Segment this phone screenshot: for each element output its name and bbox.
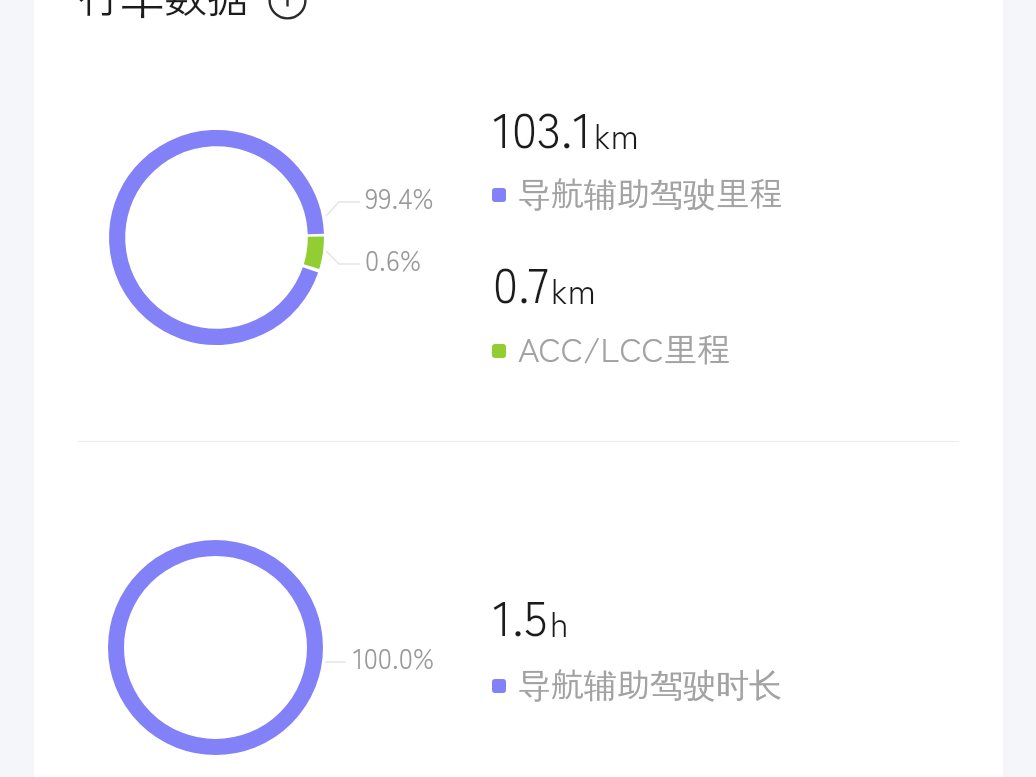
button[interactable]: 行车数据说明 <box>268 0 307 20</box>
staticText: 行车数据 <box>78 0 250 26</box>
staticText: 导航辅助驾驶里程 <box>518 168 782 216</box>
button[interactable]: 导航辅助驾驶时长 <box>492 659 782 707</box>
staticText: ACC/LCC里程 <box>518 324 730 372</box>
button[interactable]: 行车数据 <box>70 0 320 25</box>
staticText: 0.7 <box>493 246 549 318</box>
staticText: km <box>594 108 639 159</box>
staticText: 1.5 <box>493 579 548 651</box>
staticText: 导航辅助驾驶时长 <box>518 659 782 707</box>
staticText: 99.4% <box>365 177 434 218</box>
button[interactable]: ACC/LCC里程 <box>492 324 730 372</box>
staticText: 100.0% <box>353 637 435 678</box>
staticText: h <box>550 596 569 647</box>
staticText: km <box>551 263 596 314</box>
button[interactable]: 导航辅助驾驶里程 <box>492 168 782 216</box>
button[interactable]: 0.7 <box>493 246 596 318</box>
button[interactable]: 1.5 <box>493 579 569 651</box>
button[interactable]: 103.1 <box>493 91 639 163</box>
staticText: 103.1 <box>493 91 592 163</box>
staticText: 0.6% <box>365 239 422 280</box>
